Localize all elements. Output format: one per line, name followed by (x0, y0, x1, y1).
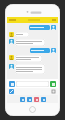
button[interactable]: My avatar (9, 48, 56, 53)
button[interactable]: My avatar (9, 25, 56, 30)
other: Contact avatar (9, 32, 14, 37)
button[interactable]: Menu (7, 17, 58, 23)
button[interactable]: Send (50, 81, 56, 87)
other: Contact avatar (9, 64, 14, 69)
other: Contact avatar (9, 39, 14, 44)
button[interactable]: Mic (41, 97, 46, 102)
button[interactable]: Contact avatar (9, 39, 56, 46)
other: Contact avatar (9, 55, 14, 60)
button[interactable]: Contact avatar (9, 64, 56, 74)
button[interactable]: Keyboard (51, 89, 56, 94)
button[interactable] (16, 81, 49, 87)
button[interactable]: Contact avatar (9, 32, 56, 37)
button[interactable]: Contact avatar (9, 55, 56, 62)
other: My avatar (51, 48, 56, 53)
button[interactable]: Sticker (27, 97, 32, 102)
button[interactable]: Expand (9, 89, 14, 94)
other: My avatar (51, 25, 56, 30)
button[interactable]: Attach (9, 81, 15, 87)
button[interactable]: Emoji (20, 97, 25, 102)
button[interactable]: Photo (34, 97, 39, 102)
